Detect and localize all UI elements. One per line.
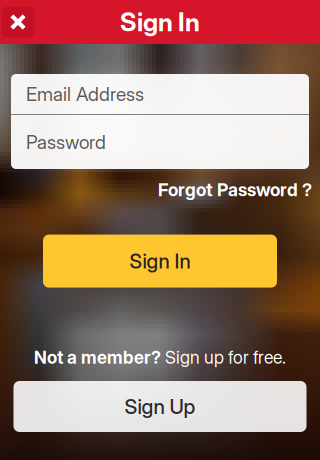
staticText: Sign up for free. bbox=[165, 347, 286, 368]
staticText: Sign Up bbox=[124, 394, 195, 419]
staticText: Forgot Password ? bbox=[158, 179, 312, 201]
button[interactable]: Password bbox=[11, 115, 309, 169]
button[interactable]: Sign In bbox=[43, 235, 277, 288]
staticText: Sign In bbox=[120, 7, 200, 37]
button[interactable]: Email Address bbox=[11, 74, 309, 114]
staticText: Email Address bbox=[26, 82, 144, 106]
button[interactable]: Sign Up bbox=[13, 381, 306, 432]
staticText: Not a member? bbox=[34, 347, 161, 368]
staticText: Password bbox=[26, 130, 106, 154]
staticText: Sign In bbox=[129, 249, 190, 273]
button[interactable]: Forgot Password ? bbox=[158, 177, 312, 203]
button[interactable]: Close bbox=[0, 0, 36, 44]
